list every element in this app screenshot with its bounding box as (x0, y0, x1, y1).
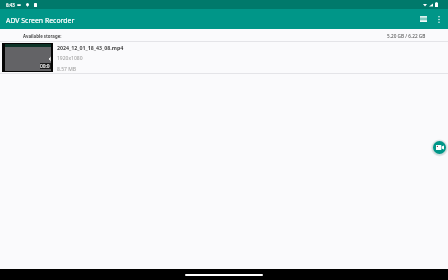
staticText: 00:03 (40, 63, 51, 69)
button[interactable]: 00:03 (0, 42, 448, 73)
button[interactable]: Video list (417, 9, 430, 29)
staticText: 1920x1080 (57, 55, 83, 62)
button[interactable]: More options (433, 9, 444, 29)
staticText: 6:43 (6, 2, 15, 8)
staticText: 2024_12_01_18_43_08.mp4 (57, 44, 124, 51)
staticText: 8.57 MB (57, 66, 77, 73)
button[interactable]: Home (185, 274, 263, 276)
staticText: ADV Screen Recorder (6, 16, 75, 25)
staticText: 5.20 GB / 6.22 GB (387, 33, 426, 39)
button[interactable]: Record video (433, 141, 446, 154)
staticText: Available storage: (23, 33, 62, 39)
